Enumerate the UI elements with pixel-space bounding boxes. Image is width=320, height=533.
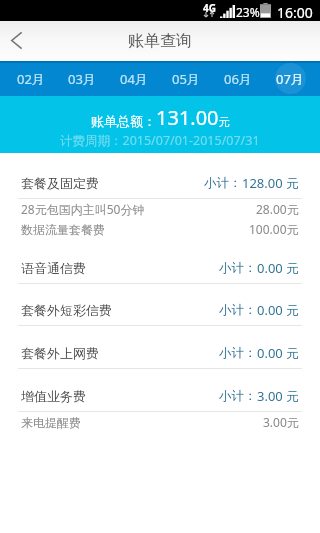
- button[interactable]: 05月: [160, 61, 212, 96]
- staticText: 小计：: [219, 260, 257, 276]
- button[interactable]: 07月: [264, 61, 316, 96]
- staticText: 28.00元: [256, 201, 299, 217]
- staticText: 计费周期：2015/07/01-2015/07/31: [60, 132, 260, 149]
- button[interactable]: Back: [0, 21, 36, 61]
- button[interactable]: 06月: [212, 61, 264, 96]
- button[interactable]: 语音通信费: [0, 253, 320, 283]
- button[interactable]: 套餐外短彩信费: [0, 295, 320, 325]
- staticText: 100.00元: [249, 221, 299, 237]
- staticText: 0.00: [257, 259, 283, 277]
- staticText: 28元包国内主叫50分钟: [21, 201, 145, 217]
- staticText: 账单总额：: [91, 113, 156, 129]
- staticText: 16:00: [277, 3, 313, 22]
- staticText: 0.00: [257, 301, 283, 319]
- staticText: 小计：: [204, 175, 242, 191]
- staticText: 套餐外上网费: [21, 345, 99, 361]
- staticText: 小计：: [219, 388, 257, 404]
- staticText: 元: [283, 345, 299, 362]
- staticText: 套餐及固定费: [21, 175, 99, 191]
- staticText: 05月: [172, 70, 200, 88]
- staticText: 元: [283, 260, 299, 277]
- button[interactable]: 套餐外上网费: [0, 338, 320, 368]
- staticText: 元: [283, 388, 299, 405]
- staticText: 小计：: [219, 302, 257, 318]
- button[interactable]: 03月: [56, 61, 108, 96]
- staticText: 账单查询: [128, 31, 192, 51]
- staticText: 06月: [224, 70, 252, 88]
- button[interactable]: 套餐及固定费: [0, 168, 320, 198]
- staticText: 元: [283, 302, 299, 319]
- button[interactable]: 02月: [5, 61, 56, 96]
- staticText: 套餐外短彩信费: [21, 302, 112, 318]
- button[interactable]: 增值业务费: [0, 381, 320, 411]
- staticText: 增值业务费: [21, 388, 86, 404]
- staticText: 128.00: [242, 174, 283, 192]
- staticText: 3.00: [257, 387, 283, 405]
- staticText: 语音通信费: [21, 260, 86, 276]
- staticText: 02月: [17, 70, 45, 88]
- staticText: 数据流量套餐费: [21, 222, 105, 237]
- staticText: 23%: [236, 4, 260, 20]
- button[interactable]: 04月: [108, 61, 160, 96]
- staticText: 3.00元: [263, 414, 299, 430]
- staticText: 元: [219, 115, 230, 129]
- staticText: 131.00: [156, 104, 219, 131]
- staticText: 4G: [203, 1, 216, 15]
- staticText: 元: [283, 175, 299, 192]
- staticText: 小计：: [219, 345, 257, 361]
- staticText: 04月: [120, 70, 148, 88]
- staticText: 来电提醒费: [21, 415, 81, 430]
- staticText: 03月: [68, 70, 96, 88]
- staticText: 0.00: [257, 344, 283, 362]
- staticText: 07月: [276, 70, 304, 88]
